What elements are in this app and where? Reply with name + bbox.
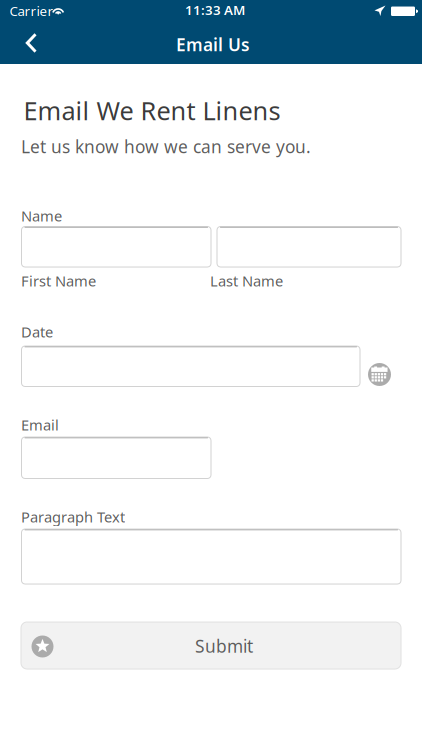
staticText: Email We Rent Linens: [23, 93, 280, 127]
staticText: Carrier: [9, 2, 53, 20]
staticText: Date: [21, 322, 53, 341]
staticText: First Name: [21, 271, 96, 290]
staticText: Paragraph Text: [21, 507, 125, 526]
staticText: 11:33 AM: [185, 1, 245, 19]
button[interactable]: Submit: [21, 622, 401, 669]
button[interactable]: First Name: [21, 226, 211, 267]
staticText: Last Name: [210, 271, 283, 290]
staticText: Submit: [195, 634, 253, 657]
button[interactable]: Date: [21, 346, 360, 386]
staticText: Email Us: [176, 33, 250, 56]
button[interactable]: Choose date: [368, 363, 391, 386]
button[interactable]: Last Name: [217, 226, 401, 267]
staticText: Let us know how we can serve you.: [21, 135, 311, 158]
button[interactable]: Back: [14, 28, 48, 58]
button[interactable]: Paragraph Text: [21, 529, 401, 584]
staticText: Email: [21, 415, 59, 434]
staticText: Name: [21, 206, 62, 225]
button[interactable]: Email: [21, 437, 211, 478]
